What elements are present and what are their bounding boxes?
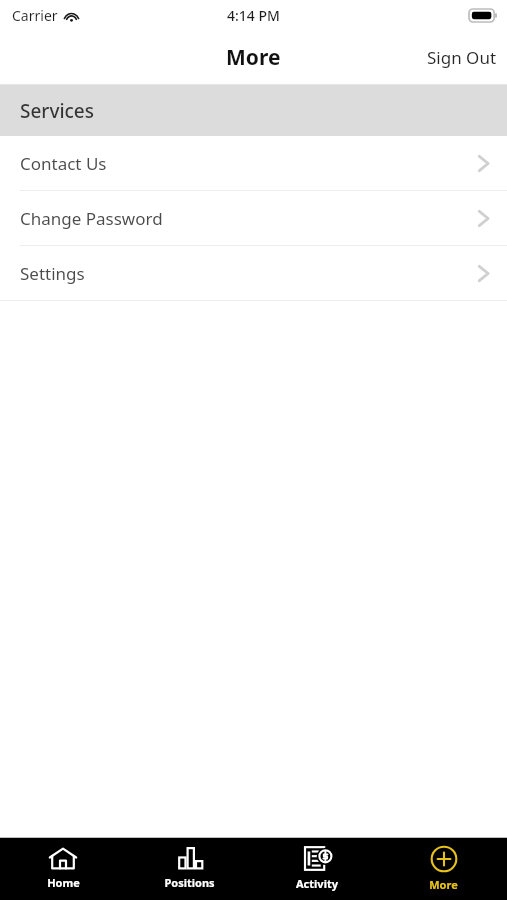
other: Positions [175,845,205,871]
button[interactable]: More [380,838,507,900]
other: Activity [302,845,332,872]
button[interactable]: Change Password [0,191,507,245]
staticText: Home [47,875,80,890]
staticText: Carrier [12,6,58,25]
staticText: More [226,43,281,72]
staticText: Services [20,98,95,124]
staticText: Change Password [20,207,163,230]
staticText: Contact Us [20,152,107,175]
staticText: Activity [296,876,338,891]
button[interactable]: Activity [253,838,380,900]
button[interactable]: Contact Us [0,136,507,190]
staticText: Sign Out [427,46,497,69]
other: Home [48,845,78,871]
button[interactable]: Home [0,838,126,900]
button[interactable]: Positions [126,838,253,900]
staticText: 4:14 PM [227,6,280,25]
button[interactable]: Sign Out [417,38,507,77]
button[interactable]: Settings [0,246,507,300]
other: More [430,845,458,873]
staticText: Positions [164,875,215,890]
staticText: Settings [20,262,85,285]
staticText: More [429,877,458,892]
